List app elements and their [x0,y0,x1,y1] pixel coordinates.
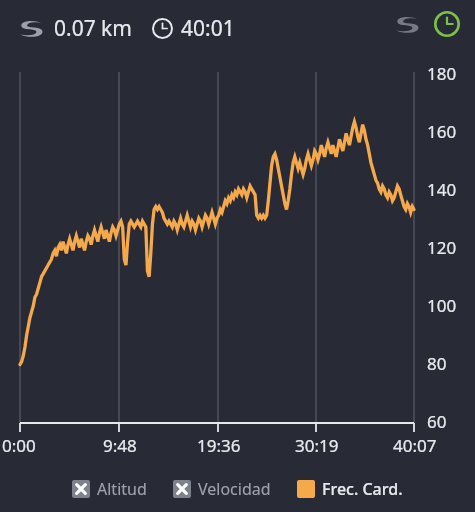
staticText: 180 [427,62,457,85]
staticText: 0:00 [2,434,36,457]
button[interactable]: Frec. Card. [297,478,403,500]
staticText: 100 [427,294,457,317]
staticText: Altitud [97,478,147,500]
staticText: 120 [427,236,457,259]
button[interactable]: Show distance chart [389,6,425,42]
staticText: 19:36 [197,434,241,457]
button[interactable]: Show time chart [429,6,465,42]
staticText: Velocidad [198,478,271,500]
staticText: 60 [427,410,447,433]
staticText: 40:01 [181,14,235,43]
staticText: 0.07 km [54,14,132,43]
button[interactable]: Velocidad [173,478,271,500]
button[interactable]: Altitud [72,478,147,500]
staticText: 160 [427,120,457,143]
staticText: 30:19 [295,434,339,457]
staticText: 80 [427,352,447,375]
staticText: Frec. Card. [322,478,403,500]
staticText: 40:07 [393,434,437,457]
staticText: 140 [427,178,457,201]
staticText: 9:48 [103,434,137,457]
